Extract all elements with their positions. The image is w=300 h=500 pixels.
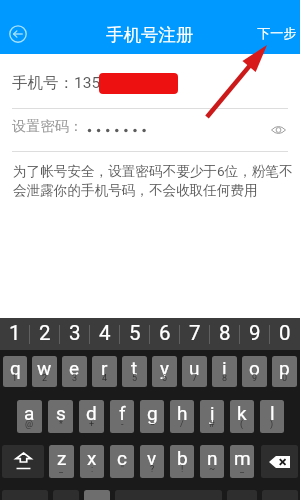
staticText: h <box>177 402 188 424</box>
button[interactable]: p <box>272 356 297 387</box>
staticText: 3 <box>72 373 78 384</box>
button[interactable]: j <box>200 400 224 433</box>
staticText: z <box>57 447 67 469</box>
staticText: 手机号注册 <box>106 24 194 46</box>
staticText: y <box>160 357 169 379</box>
button[interactable]: 8 <box>210 318 240 350</box>
staticText: - <box>121 419 124 430</box>
staticText: 3 <box>69 321 81 345</box>
button[interactable]: 9 <box>240 318 270 350</box>
staticText: 6 <box>159 321 171 345</box>
staticText: s <box>56 402 66 424</box>
staticText: 0 <box>282 373 288 384</box>
button[interactable]: n <box>200 445 224 478</box>
button[interactable]: Backspace <box>261 445 298 478</box>
staticText: 9 <box>249 321 261 345</box>
button[interactable]: h <box>170 400 194 433</box>
button[interactable]: 7 <box>180 318 210 350</box>
staticText: l <box>270 402 275 424</box>
staticText: g <box>147 402 158 424</box>
button[interactable]: u <box>182 356 207 387</box>
button[interactable]: c <box>110 445 134 478</box>
staticText: 下一步 <box>257 25 297 42</box>
button[interactable]: q <box>3 356 27 387</box>
staticText: c <box>117 447 127 469</box>
staticText: 9 <box>252 373 258 384</box>
staticText: 7 <box>192 373 198 384</box>
staticText: 为了帐号安全，设置密码不要少于6位，粉笔不会泄露你的手机号码，不会收取任何费用 <box>13 163 296 199</box>
staticText: t <box>131 357 138 379</box>
button[interactable]: t <box>122 356 147 387</box>
button[interactable]: 下一步 <box>249 22 300 45</box>
button[interactable]: d <box>79 400 104 433</box>
staticText: n <box>207 447 218 469</box>
button[interactable]: a <box>17 400 42 433</box>
button[interactable]: 3 <box>60 318 90 350</box>
staticText: 5 <box>132 373 138 384</box>
staticText: 1 <box>9 321 21 345</box>
staticText: _ <box>59 464 64 475</box>
button[interactable]: y <box>152 356 177 387</box>
staticText: 4 <box>99 321 111 345</box>
staticText: ( <box>240 419 244 430</box>
button[interactable]: s <box>48 400 73 433</box>
button[interactable]: Show password <box>267 119 289 141</box>
staticText: 6 <box>162 373 168 384</box>
staticText: m <box>234 447 251 469</box>
button[interactable]: k <box>230 400 254 433</box>
button[interactable]: g <box>140 400 164 433</box>
staticText: r <box>101 357 108 379</box>
button[interactable]: r <box>92 356 117 387</box>
staticText: w <box>37 357 52 379</box>
button[interactable]: b <box>170 445 194 478</box>
staticText: 手机号：135 <box>12 73 101 93</box>
staticText: a <box>24 402 35 424</box>
button[interactable]: o <box>242 356 267 387</box>
button[interactable]: 5 <box>120 318 150 350</box>
staticText: 设置密码： <box>12 117 83 135</box>
staticText: + <box>89 419 95 430</box>
button[interactable]: m <box>230 445 254 478</box>
staticText: q <box>10 357 21 379</box>
staticText: v <box>147 447 157 469</box>
staticText: 2 <box>42 373 48 384</box>
staticText: u <box>189 357 200 379</box>
button[interactable]: , <box>84 490 110 500</box>
staticText: ) <box>270 419 274 430</box>
button[interactable]: x <box>80 445 104 478</box>
button[interactable]: 4 <box>90 318 120 350</box>
staticText: 7 <box>189 321 201 345</box>
staticText: _ <box>240 464 245 475</box>
staticText: ! <box>181 464 184 475</box>
button[interactable]: l <box>260 400 284 433</box>
staticText: 1 <box>12 373 18 384</box>
staticText: ~ <box>209 464 216 475</box>
button[interactable]: Back <box>6 22 30 46</box>
staticText: ? <box>150 464 155 475</box>
staticText: k <box>237 402 247 424</box>
staticText: 8 <box>222 373 228 384</box>
staticText: 0 <box>279 321 291 345</box>
staticText: = <box>150 419 155 430</box>
button[interactable]: f <box>110 400 134 433</box>
button[interactable]: i <box>212 356 237 387</box>
button[interactable]: e <box>62 356 87 387</box>
button[interactable]: 0 <box>270 318 300 350</box>
staticText: i <box>222 357 227 379</box>
button[interactable]: Shift <box>2 445 44 478</box>
button[interactable]: z <box>49 445 74 478</box>
button[interactable]: 6 <box>150 318 180 350</box>
button[interactable]: 1 <box>0 318 30 350</box>
button[interactable]: v <box>140 445 164 478</box>
staticText: / <box>180 419 184 430</box>
staticText: " <box>121 464 124 475</box>
button[interactable]: w <box>32 356 57 387</box>
button[interactable]: 2 <box>30 318 60 350</box>
